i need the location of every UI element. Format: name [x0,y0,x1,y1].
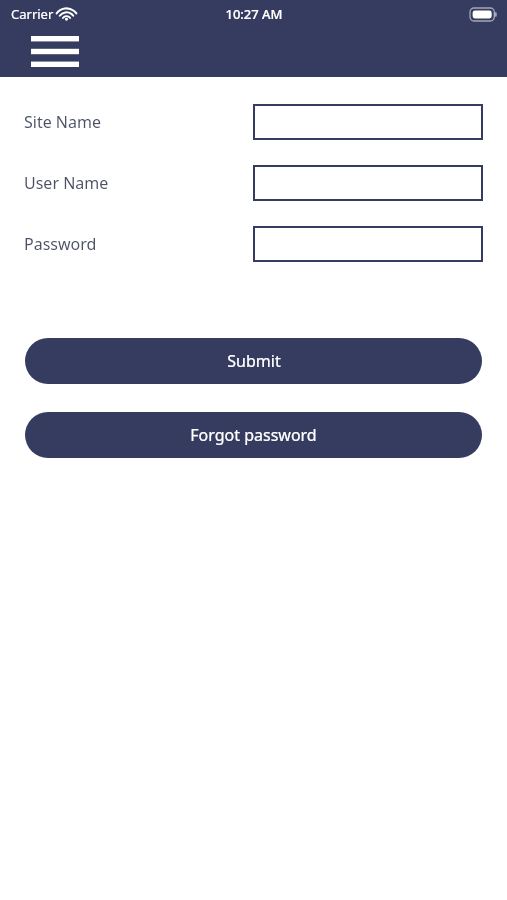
staticText: 10:27 AM [225,5,283,23]
staticText: Submit [227,350,281,372]
staticText: User Name [24,172,109,194]
button[interactable] [253,226,483,262]
button[interactable]: Submit [25,338,482,384]
button[interactable] [253,165,483,201]
staticText: Site Name [24,111,101,133]
button[interactable] [253,104,483,140]
button[interactable]: Open navigation menu [24,29,86,73]
staticText: Carrier [11,5,54,23]
staticText: Forgot password [190,424,317,446]
staticText: Password [24,233,97,255]
button[interactable]: Forgot password [25,412,482,458]
